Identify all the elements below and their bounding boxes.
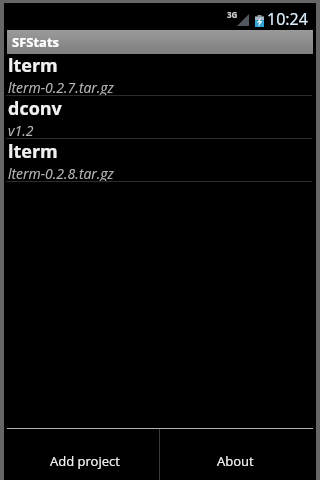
- button[interactable]: About: [160, 429, 310, 480]
- button[interactable]: lterm: [4, 53, 316, 96]
- staticText: dconv: [8, 96, 62, 121]
- staticText: Add project: [50, 452, 120, 470]
- staticText: SFStats: [12, 33, 60, 51]
- button[interactable]: lterm: [4, 139, 316, 182]
- staticText: v1.2: [8, 121, 34, 138]
- staticText: 3G: [227, 9, 238, 20]
- button[interactable]: Add project: [10, 429, 159, 480]
- staticText: lterm: [8, 139, 58, 164]
- staticText: 10:24: [267, 8, 308, 30]
- staticText: About: [217, 452, 254, 470]
- staticText: lterm-0.2.8.tar.gz: [8, 164, 114, 181]
- staticText: lterm-0.2.7.tar.gz: [8, 78, 114, 95]
- staticText: lterm: [8, 53, 58, 78]
- button[interactable]: dconv: [4, 96, 316, 139]
